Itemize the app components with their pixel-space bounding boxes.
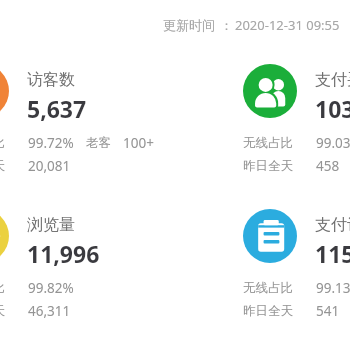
staticText: 昨日全天 <box>243 158 293 174</box>
button[interactable]: 访客数 <box>0 64 9 118</box>
button[interactable]: 支付订单数 <box>315 215 350 235</box>
staticText: 更新时间 <box>163 17 215 33</box>
button[interactable]: 支付买家数 <box>315 70 350 90</box>
staticText: 昨日全天 <box>243 303 293 319</box>
staticText: 100+ <box>123 134 154 152</box>
staticText: 541 <box>316 302 340 320</box>
staticText: 5,637 <box>27 93 87 124</box>
button[interactable]: 浏览量 <box>0 209 9 263</box>
staticText: 99.72% <box>28 134 74 152</box>
staticText: 支付订单数 <box>315 215 350 235</box>
staticText: 老客 <box>86 135 111 151</box>
button[interactable]: 支付买家数 <box>243 64 297 118</box>
staticText: 无线占比 <box>243 135 293 151</box>
staticText: 1035 <box>315 93 350 124</box>
staticText: 浏览量 <box>27 215 75 235</box>
staticText: 昨日全天 <box>0 158 5 174</box>
button[interactable]: 支付订单数 <box>243 209 297 263</box>
staticText: 99.82% <box>28 279 74 297</box>
button[interactable]: 更新时间 <box>163 16 340 34</box>
staticText: 11,996 <box>27 238 100 269</box>
button[interactable]: 1156 <box>315 238 350 269</box>
button[interactable]: 访客数 <box>27 70 75 90</box>
staticText: 99.03% <box>316 134 350 152</box>
staticText: 访客数 <box>27 70 75 90</box>
staticText: 无线占比 <box>243 280 293 296</box>
staticText: 无线占比 <box>0 135 5 151</box>
button[interactable]: 浏览量 <box>27 215 75 235</box>
staticText: 支付买家数 <box>315 70 350 90</box>
staticText: ： <box>220 17 233 33</box>
button[interactable]: 11,996 <box>27 238 100 269</box>
button[interactable]: 1035 <box>315 93 350 124</box>
staticText: 46,311 <box>28 302 71 320</box>
button[interactable]: 5,637 <box>27 93 87 124</box>
staticText: 2020-12-31 09:55 <box>235 16 340 34</box>
staticText: 458 <box>316 157 340 175</box>
staticText: 1156 <box>315 238 350 269</box>
staticText: 无线占比 <box>0 280 5 296</box>
staticText: 昨日全天 <box>0 303 5 319</box>
staticText: 20,081 <box>28 157 71 175</box>
staticText: 99.13% <box>316 279 350 297</box>
